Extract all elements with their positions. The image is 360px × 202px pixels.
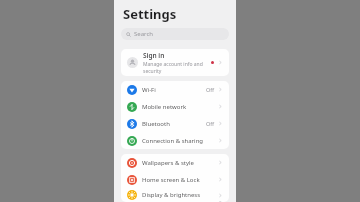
other: Search bbox=[126, 32, 131, 37]
staticText: Mobile network bbox=[142, 103, 218, 111]
staticText: Wallpapers & style bbox=[142, 159, 218, 167]
staticText: Wi-Fi bbox=[142, 86, 206, 94]
staticText: Settings bbox=[123, 5, 177, 23]
button[interactable]: Search bbox=[121, 28, 229, 40]
button[interactable]: Connection & sharing bbox=[121, 132, 229, 149]
staticText: Bluetooth bbox=[142, 120, 206, 128]
staticText: Manage account info and security bbox=[143, 61, 209, 74]
staticText: Off bbox=[206, 86, 215, 93]
staticText: Home screen & Lock screen bbox=[142, 176, 218, 184]
button[interactable]: Wallpapers & style bbox=[121, 154, 229, 171]
staticText: Connection & sharing bbox=[142, 137, 218, 145]
staticText: Display & brightness bbox=[142, 191, 218, 199]
button[interactable]: Mobile network bbox=[121, 98, 229, 115]
button[interactable]: Sign in bbox=[121, 49, 229, 76]
staticText: Off bbox=[206, 120, 215, 127]
button[interactable]: Home screen & Lock screen bbox=[121, 171, 229, 188]
button[interactable]: Bluetooth bbox=[121, 115, 229, 132]
staticText: Sign in bbox=[143, 51, 165, 60]
button[interactable]: Display & brightness bbox=[121, 188, 229, 202]
button[interactable]: Wi-Fi bbox=[121, 81, 229, 98]
staticText: Search bbox=[134, 30, 153, 38]
